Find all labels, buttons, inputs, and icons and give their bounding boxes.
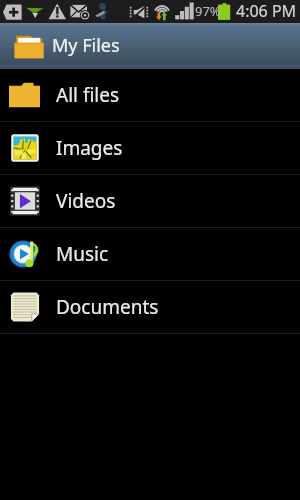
button[interactable]: My Files: [0, 23, 300, 69]
staticText: Music: [56, 241, 109, 267]
staticText: Images: [56, 135, 123, 161]
staticText: 97%: [195, 2, 221, 20]
button[interactable]: Images: [0, 122, 300, 174]
staticText: Documents: [56, 294, 159, 320]
button[interactable]: Videos: [0, 175, 300, 227]
staticText: All files: [56, 82, 120, 108]
staticText: My Files: [52, 33, 120, 58]
staticText: Videos: [56, 188, 116, 214]
button[interactable]: All files: [0, 69, 300, 121]
button[interactable]: Music: [0, 228, 300, 280]
button[interactable]: Documents: [0, 281, 300, 333]
staticText: 4:06 PM: [236, 0, 297, 22]
